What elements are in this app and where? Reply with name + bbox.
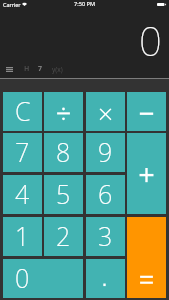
- staticText: 1: [15, 219, 30, 253]
- button[interactable]: Multiply: [86, 92, 125, 131]
- button[interactable]: 8: [44, 133, 83, 172]
- button[interactable]: 3: [86, 217, 125, 256]
- staticText: 4: [15, 177, 30, 211]
- button[interactable]: 7: [34, 63, 46, 75]
- staticText: 3: [98, 219, 113, 253]
- button[interactable]: H: [21, 63, 33, 75]
- staticText: 9: [98, 135, 113, 169]
- button[interactable]: Decimal point: [86, 259, 125, 298]
- staticText: y(x): [52, 65, 63, 74]
- staticText: 0: [139, 13, 162, 67]
- staticText: Carrier: [3, 1, 21, 8]
- staticText: 7: [38, 64, 43, 74]
- staticText: C: [15, 94, 31, 128]
- button[interactable]: Plus: [127, 133, 166, 214]
- button[interactable]: Menu: [2, 63, 16, 75]
- button[interactable]: 1: [3, 217, 42, 256]
- button[interactable]: Equals: [127, 217, 166, 298]
- button[interactable]: y(x): [50, 63, 65, 75]
- button[interactable]: 0: [3, 259, 83, 298]
- staticText: 6: [98, 177, 113, 211]
- staticText: 7: [15, 135, 30, 169]
- button[interactable]: 5: [44, 175, 83, 214]
- button[interactable]: 7: [3, 133, 42, 172]
- button[interactable]: Clear: [3, 92, 42, 131]
- staticText: H: [24, 64, 30, 74]
- staticText: 7:50 PM: [74, 0, 96, 8]
- button[interactable]: 9: [86, 133, 125, 172]
- staticText: 5: [56, 177, 71, 211]
- button[interactable]: Divide: [44, 92, 83, 131]
- staticText: 8: [56, 135, 71, 169]
- button[interactable]: 2: [44, 217, 83, 256]
- button[interactable]: 4: [3, 175, 42, 214]
- staticText: 0: [15, 261, 30, 295]
- staticText: 2: [56, 219, 71, 253]
- button[interactable]: Minus: [127, 92, 166, 131]
- button[interactable]: 6: [86, 175, 125, 214]
